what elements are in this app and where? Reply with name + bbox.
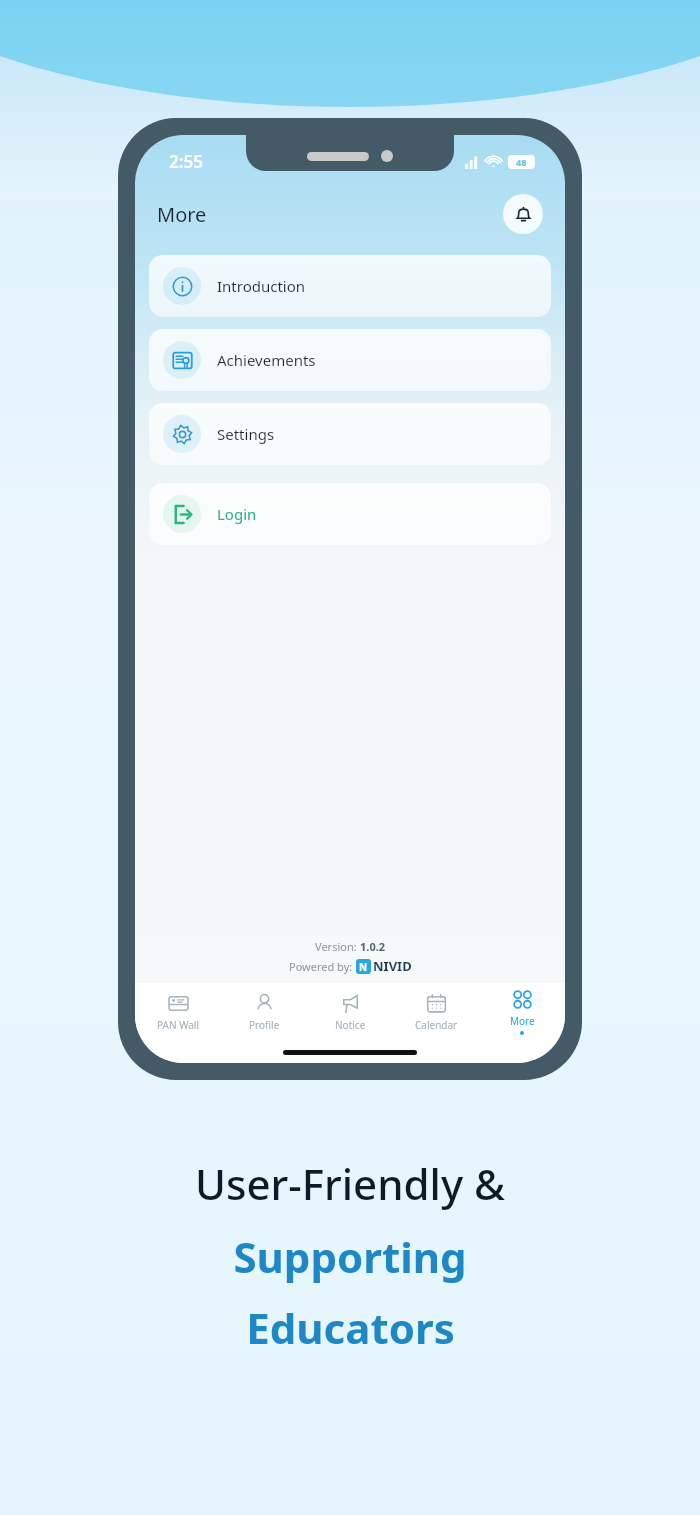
button[interactable]: Login: [149, 483, 551, 545]
staticText: N: [359, 960, 368, 974]
staticText: Achievements: [217, 350, 316, 370]
button[interactable]: Notice: [307, 983, 393, 1041]
button[interactable]: Profile: [221, 983, 307, 1041]
staticText: PAN Wall: [157, 1018, 200, 1032]
staticText: 2:55: [169, 150, 203, 173]
button[interactable]: PAN Wall: [135, 983, 221, 1041]
staticText: User-Friendly &: [195, 1155, 505, 1212]
staticText: Supporting: [233, 1228, 467, 1285]
staticText: Login: [217, 504, 257, 524]
staticText: Version:: [315, 939, 360, 954]
staticText: Introduction: [217, 276, 306, 296]
staticText: NIVID: [373, 957, 412, 975]
staticText: Educators: [246, 1299, 455, 1356]
button[interactable]: Notifications: [503, 194, 543, 234]
staticText: More: [510, 1014, 535, 1028]
button[interactable]: Calendar: [393, 983, 479, 1041]
staticText: Profile: [249, 1018, 280, 1032]
button[interactable]: Introduction: [149, 255, 551, 317]
button[interactable]: Achievements: [149, 329, 551, 391]
staticText: More: [157, 201, 207, 228]
button[interactable]: More: [479, 983, 565, 1041]
staticText: Settings: [217, 424, 275, 444]
staticText: 1.0.2: [360, 939, 386, 954]
button[interactable]: Settings: [149, 403, 551, 465]
staticText: Powered by:: [289, 959, 356, 974]
staticText: 48: [516, 156, 527, 168]
staticText: Calendar: [415, 1018, 458, 1032]
staticText: Notice: [335, 1018, 366, 1032]
